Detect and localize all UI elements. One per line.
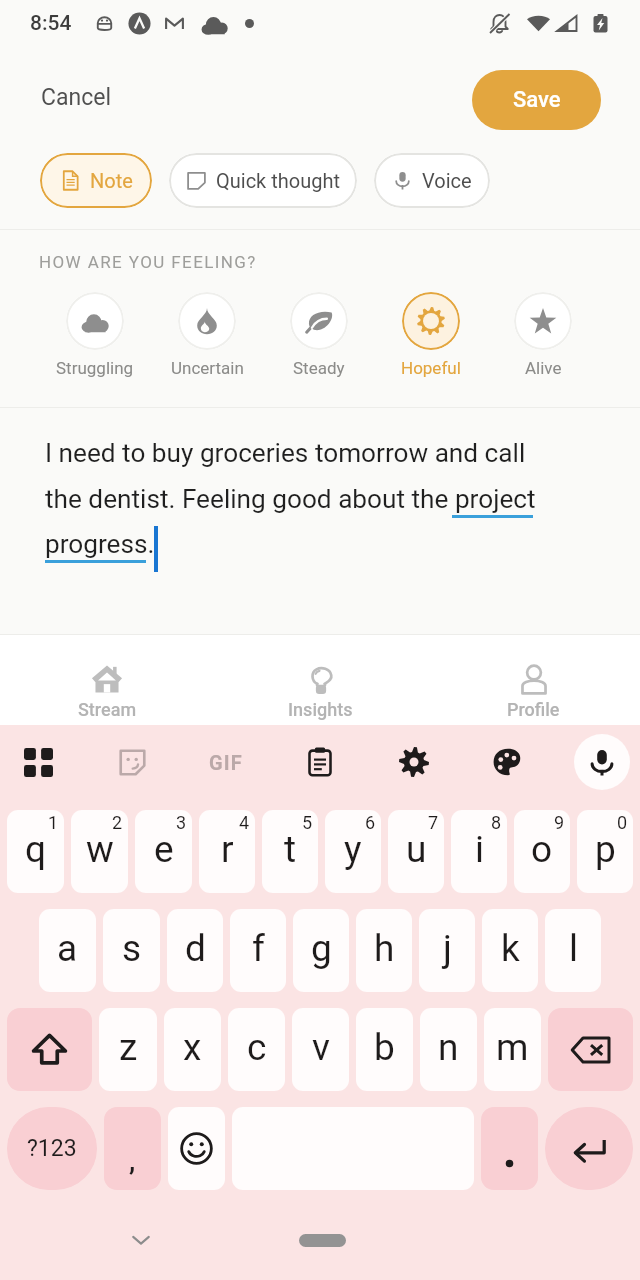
staticText: Stream xyxy=(78,699,137,720)
button[interactable]: 3 xyxy=(135,810,192,893)
button[interactable]: Stickers xyxy=(104,734,160,790)
staticText: 8 xyxy=(491,812,502,833)
staticText: u xyxy=(406,828,427,871)
staticText: j xyxy=(443,927,452,970)
button[interactable]: 7 xyxy=(388,810,444,893)
button[interactable]: l xyxy=(545,909,601,992)
staticText: e xyxy=(154,828,174,871)
staticText: 2 xyxy=(112,812,123,833)
button[interactable]: Uncertain xyxy=(151,292,263,378)
staticText: c xyxy=(247,1026,267,1069)
button[interactable]: Voice input xyxy=(574,734,630,790)
button[interactable]: h xyxy=(356,909,412,992)
staticText: 4 xyxy=(239,812,250,833)
button[interactable]: 2 xyxy=(71,810,128,893)
staticText: w xyxy=(86,828,114,871)
staticText: Alive xyxy=(525,358,562,378)
staticText: Save xyxy=(513,87,561,113)
staticText: r xyxy=(221,828,234,871)
staticText: GIF xyxy=(209,751,244,774)
staticText: 6 xyxy=(365,812,376,833)
button[interactable]: Themes xyxy=(480,734,536,790)
button[interactable]: z xyxy=(99,1008,157,1091)
staticText: q xyxy=(25,828,47,871)
button[interactable]: Stream xyxy=(0,635,214,725)
button[interactable]: x xyxy=(164,1008,221,1091)
button[interactable]: , xyxy=(104,1107,161,1190)
button[interactable]: Apps xyxy=(10,734,66,790)
button[interactable]: Quick thought xyxy=(169,153,357,208)
staticText: 7 xyxy=(428,812,439,833)
button[interactable]: Clipboard xyxy=(292,734,348,790)
button[interactable]: n xyxy=(420,1008,477,1091)
staticText: y xyxy=(344,828,362,871)
staticText: b xyxy=(374,1026,395,1069)
button[interactable]: Hide keyboard xyxy=(117,1216,165,1264)
button[interactable]: Emoji xyxy=(168,1107,225,1190)
staticText: 5 xyxy=(302,812,313,833)
staticText: HOW ARE YOU FEELING? xyxy=(39,252,257,272)
button[interactable]: j xyxy=(419,909,475,992)
button[interactable]: c xyxy=(228,1008,285,1091)
button[interactable]: 4 xyxy=(199,810,255,893)
button[interactable]: m xyxy=(484,1008,541,1091)
staticText: 0 xyxy=(617,812,628,833)
staticText: Steady xyxy=(293,358,345,378)
button[interactable]: Cancel xyxy=(27,76,126,119)
button[interactable]: Insights xyxy=(214,635,427,725)
staticText: d xyxy=(185,927,206,970)
staticText: p xyxy=(595,828,616,871)
staticText: ?123 xyxy=(27,1135,77,1162)
button[interactable]: b xyxy=(356,1008,413,1091)
staticText: 3 xyxy=(176,812,187,833)
staticText: 1 xyxy=(48,812,59,833)
button[interactable]: 0 xyxy=(577,810,633,893)
staticText: Struggling xyxy=(56,358,134,378)
button[interactable]: Backspace xyxy=(548,1008,633,1091)
staticText: i xyxy=(475,828,484,871)
button[interactable]: v xyxy=(292,1008,349,1091)
staticText: Note xyxy=(90,169,133,192)
staticText: t xyxy=(284,828,297,871)
staticText: Profile xyxy=(507,699,560,720)
staticText: h xyxy=(374,927,395,970)
button[interactable]: GIF xyxy=(198,734,254,790)
button[interactable]: ?123 xyxy=(7,1107,97,1190)
button[interactable]: f xyxy=(230,909,286,992)
staticText: v xyxy=(312,1026,330,1069)
button[interactable]: Struggling xyxy=(39,292,151,378)
button[interactable]: 1 xyxy=(7,810,64,893)
button[interactable]: Settings xyxy=(386,734,442,790)
staticText: l xyxy=(569,927,578,970)
button[interactable]: Note xyxy=(40,153,152,208)
button[interactable]: Shift xyxy=(7,1008,92,1091)
staticText: n xyxy=(438,1026,459,1069)
button[interactable]: 9 xyxy=(514,810,570,893)
staticText: o xyxy=(531,828,553,871)
button[interactable]: k xyxy=(482,909,538,992)
button[interactable]: 8 xyxy=(451,810,507,893)
button[interactable]: Voice xyxy=(374,153,490,208)
staticText: z xyxy=(119,1026,138,1069)
staticText: Quick thought xyxy=(216,169,340,192)
staticText: Hopeful xyxy=(401,358,461,378)
button[interactable]: 5 xyxy=(262,810,318,893)
button[interactable]: a xyxy=(39,909,96,992)
button[interactable]: 6 xyxy=(325,810,381,893)
button[interactable]: Save xyxy=(472,70,601,130)
button[interactable] xyxy=(481,1107,538,1190)
button[interactable]: s xyxy=(103,909,160,992)
staticText: k xyxy=(501,927,520,970)
button[interactable]: Alive xyxy=(487,292,599,378)
staticText: 8:54 xyxy=(30,11,72,36)
staticText: g xyxy=(311,927,332,970)
button[interactable]: Hopeful xyxy=(375,292,487,378)
button[interactable]: Steady xyxy=(263,292,375,378)
button[interactable]: g xyxy=(293,909,349,992)
button[interactable]: Enter xyxy=(545,1107,633,1190)
button[interactable]: d xyxy=(167,909,223,992)
staticText: f xyxy=(252,927,265,970)
button[interactable]: Profile xyxy=(427,635,640,725)
staticText: , xyxy=(129,1146,136,1176)
